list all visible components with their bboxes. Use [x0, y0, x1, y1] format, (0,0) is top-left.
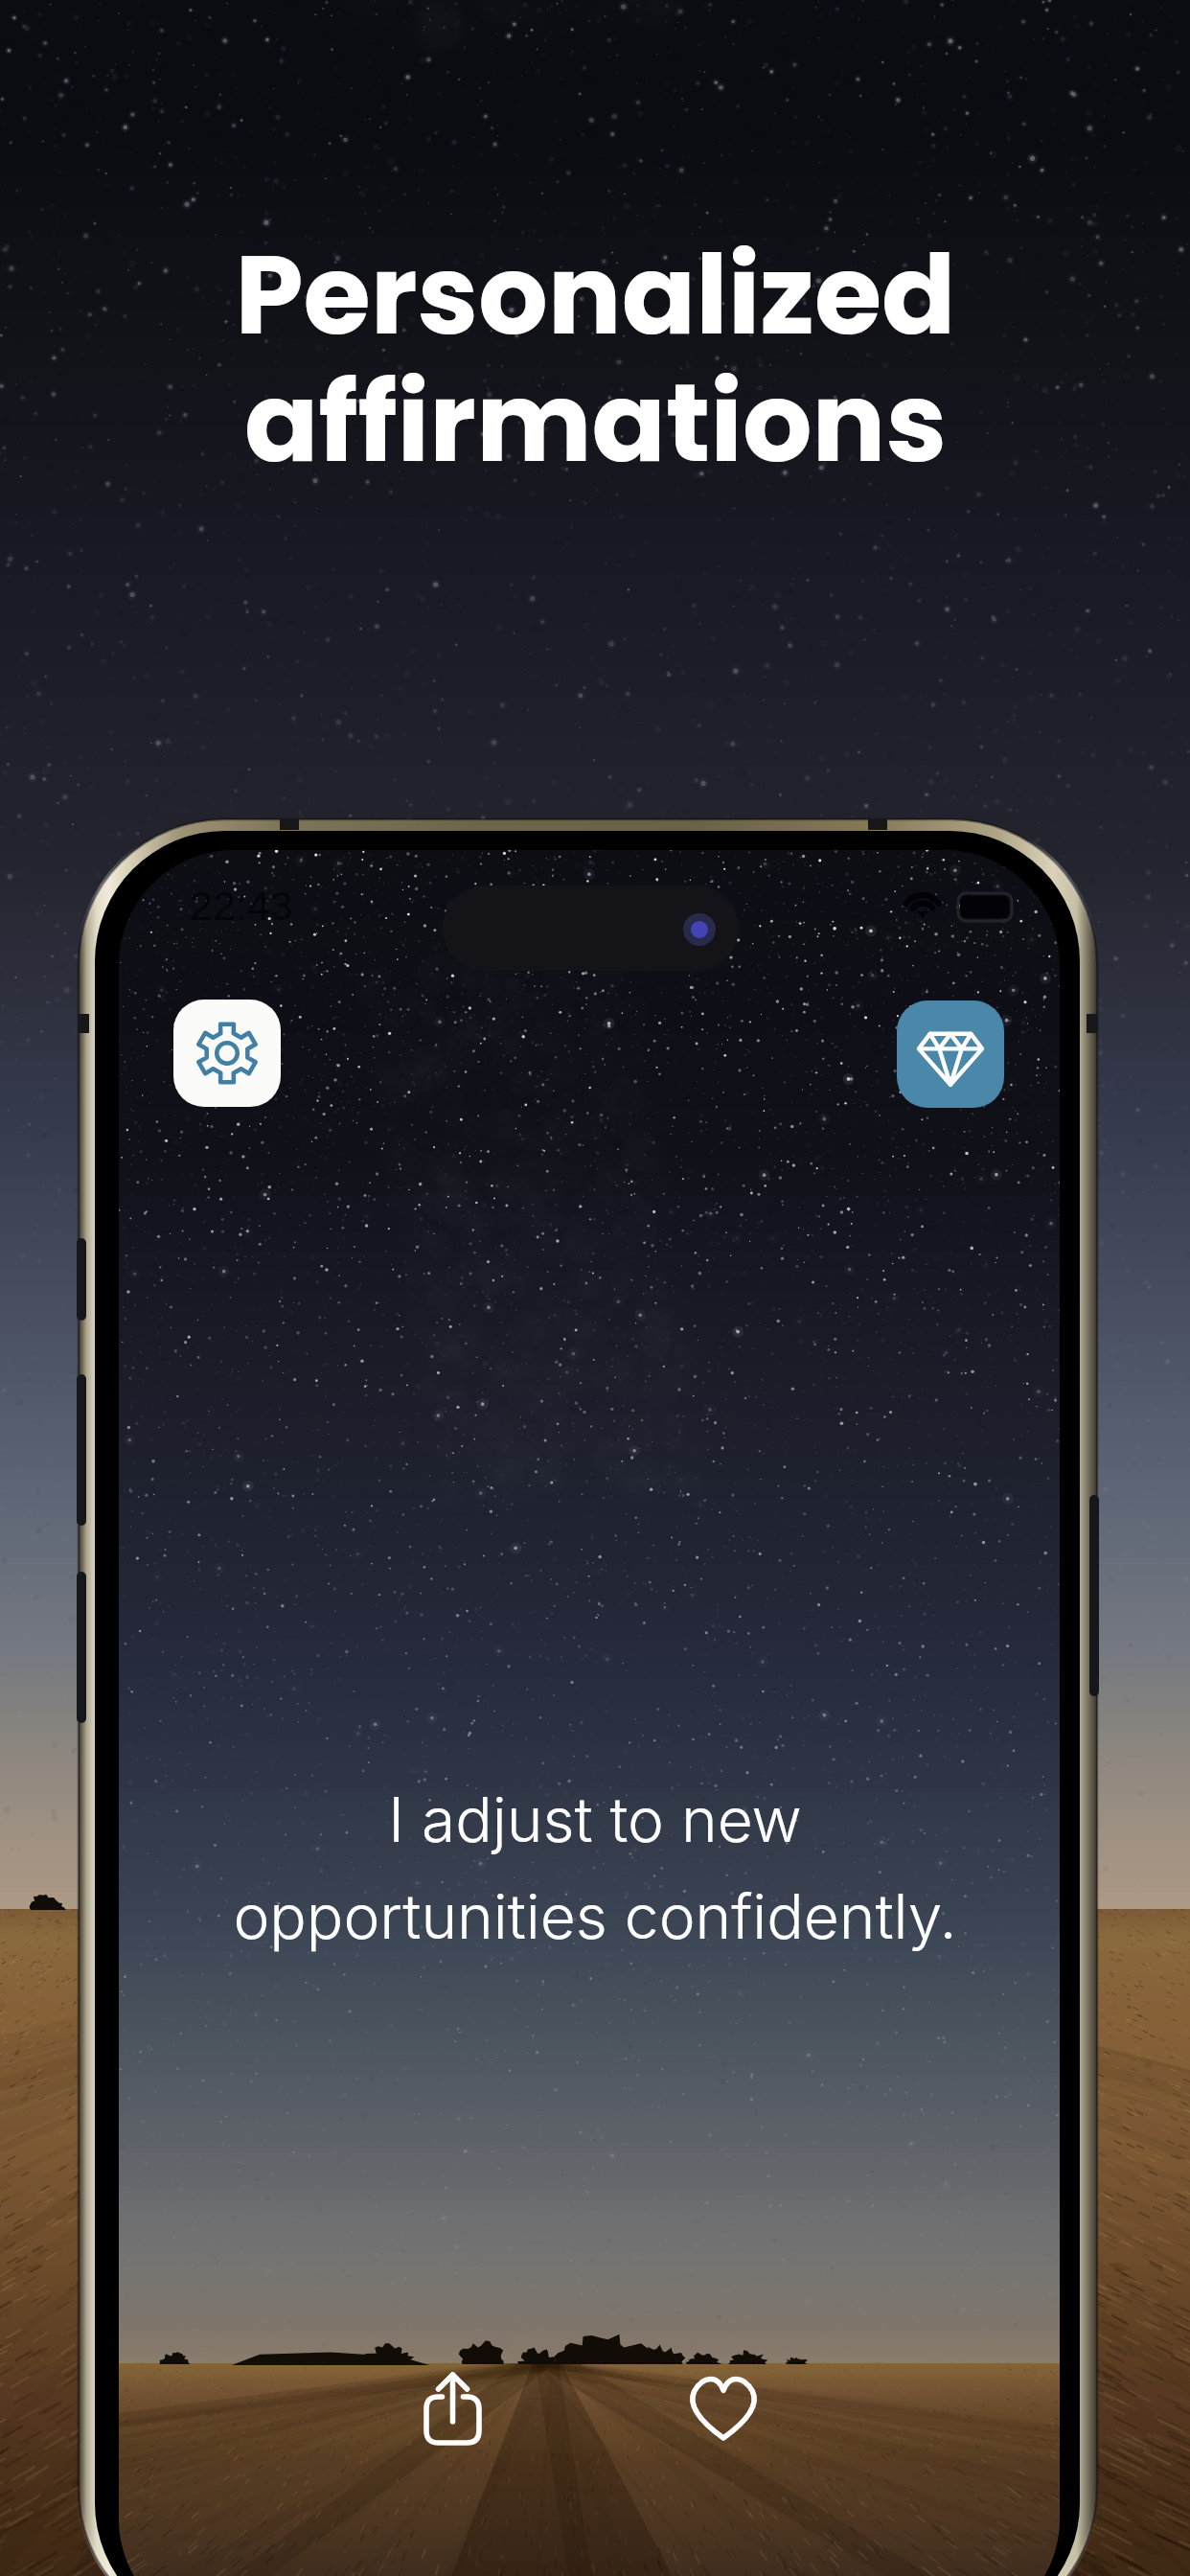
button[interactable]: Premium	[897, 1000, 1004, 1108]
staticText: 22:43	[190, 883, 293, 929]
button[interactable]: Settings	[173, 1000, 281, 1107]
button[interactable]: Favorite	[671, 2351, 777, 2457]
staticText: I adjust to new opportunities confidentl…	[233, 1782, 957, 1953]
staticText: Personalized affirmations	[235, 218, 956, 499]
button[interactable]: Share	[400, 2351, 506, 2457]
